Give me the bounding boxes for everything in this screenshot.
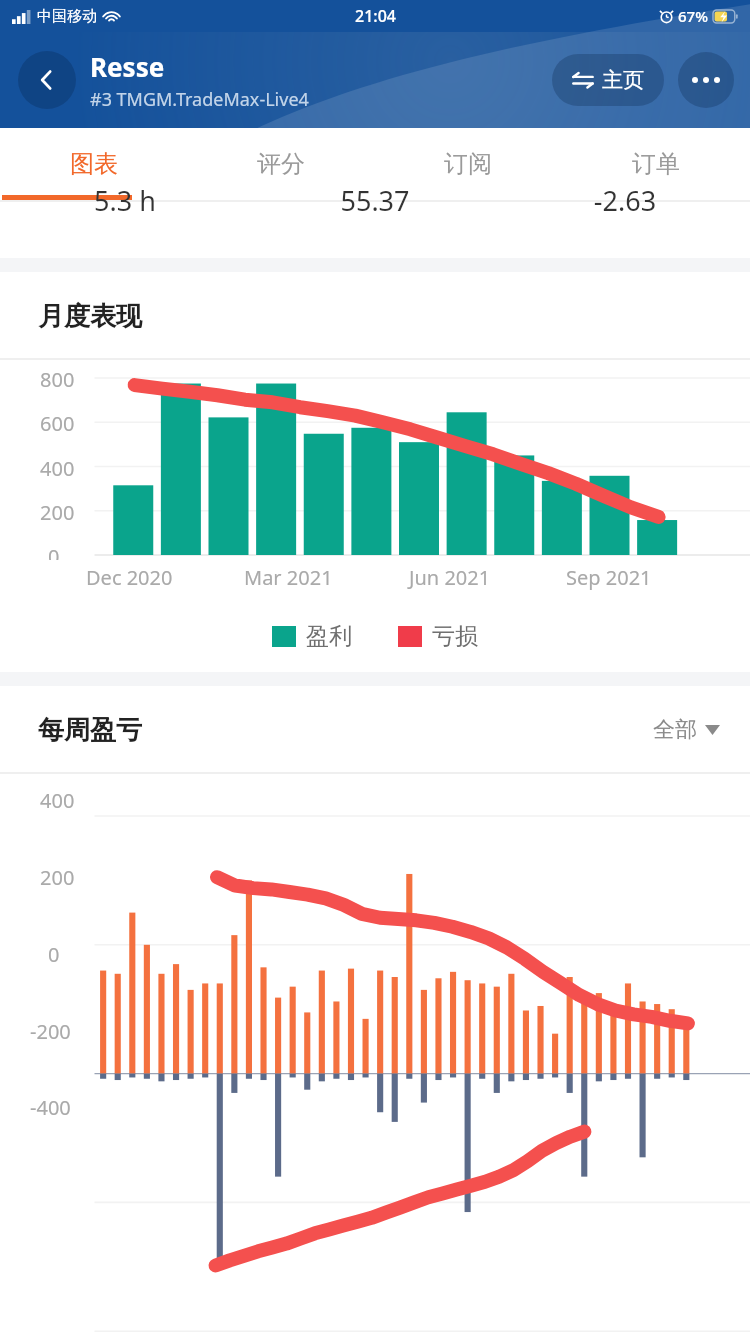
staticText: 600: [40, 410, 75, 437]
staticText: 200: [40, 499, 75, 526]
staticText: Sep 2021: [566, 564, 652, 591]
staticText: 月度表现: [38, 300, 142, 333]
staticText: 200: [40, 864, 75, 891]
staticText: 图表: [70, 149, 118, 179]
staticText: 400: [40, 787, 75, 814]
staticText: Dec 2020: [86, 564, 173, 591]
staticText: Resse: [90, 49, 165, 84]
staticText: -2.63: [500, 182, 750, 219]
button[interactable]: More options: [678, 52, 734, 108]
button[interactable]: 订阅: [374, 128, 562, 200]
staticText: 21:04: [355, 5, 396, 27]
staticText: #3 TMGM.TradeMax-Live4: [90, 87, 309, 112]
staticText: 67%: [678, 6, 708, 26]
staticText: 0: [48, 941, 60, 968]
button[interactable]: 全部: [653, 716, 720, 744]
staticText: 800: [40, 366, 75, 393]
staticText: 400: [40, 455, 75, 482]
staticText: -400: [30, 1094, 71, 1121]
staticText: 评分: [257, 149, 305, 179]
button[interactable]: Back: [18, 51, 76, 109]
staticText: 订单: [632, 149, 680, 179]
staticText: 主页: [602, 67, 644, 93]
staticText: Jun 2021: [409, 564, 491, 591]
button[interactable]: 图表: [0, 128, 187, 200]
staticText: 全部: [653, 716, 697, 744]
staticText: 订阅: [444, 149, 492, 179]
staticText: 每周盈亏: [38, 714, 142, 747]
staticText: 55.37: [250, 182, 500, 219]
button[interactable]: 订单: [562, 128, 750, 200]
staticText: 0: [48, 543, 60, 570]
staticText: -200: [30, 1018, 71, 1045]
staticText: 亏损: [432, 622, 478, 651]
button[interactable]: 评分: [187, 128, 374, 200]
staticText: Mar 2021: [244, 564, 333, 591]
staticText: 5.3 h: [0, 182, 250, 219]
staticText: 中国移动: [37, 7, 97, 26]
button[interactable]: 主页: [552, 54, 664, 106]
staticText: 盈利: [306, 622, 352, 651]
